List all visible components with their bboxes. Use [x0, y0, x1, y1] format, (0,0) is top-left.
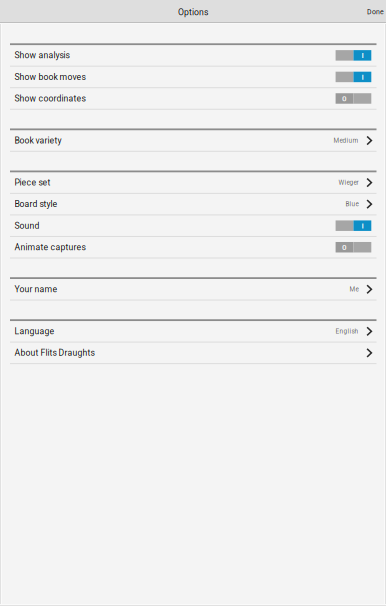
button[interactable]: Book variety: [0, 130, 386, 151]
button[interactable]: Done: [359, 0, 386, 22]
staticText: About Flits Draughts: [14, 348, 94, 358]
staticText: 0: [342, 94, 347, 103]
staticText: I: [361, 51, 363, 60]
button[interactable]: Animate captures: [0, 237, 386, 258]
staticText: I: [361, 72, 363, 82]
staticText: Show book moves: [14, 72, 85, 82]
button[interactable]: Sound: [0, 215, 386, 236]
staticText: Blue: [346, 200, 359, 208]
button[interactable]: Your name: [0, 279, 386, 300]
staticText: Board style: [14, 199, 57, 209]
staticText: Show coordinates: [14, 93, 85, 104]
button[interactable]: Piece set: [0, 172, 386, 193]
staticText: Show analysis: [14, 50, 69, 60]
button[interactable]: Show book moves: [0, 67, 386, 87]
staticText: Piece set: [14, 177, 50, 188]
staticText: 0: [342, 242, 347, 252]
staticText: Wieger: [339, 179, 359, 186]
staticText: Options: [178, 7, 208, 17]
button[interactable]: Board style: [0, 194, 386, 214]
staticText: Your name: [14, 284, 57, 294]
staticText: I: [361, 221, 363, 230]
staticText: Done: [367, 8, 384, 16]
staticText: Animate captures: [14, 242, 85, 252]
staticText: Language: [14, 326, 54, 336]
staticText: Me: [350, 285, 359, 293]
button[interactable]: Show analysis: [0, 45, 386, 66]
button[interactable]: Show coordinates: [0, 88, 386, 109]
staticText: Sound: [14, 221, 39, 231]
button[interactable]: Language: [0, 321, 386, 342]
button[interactable]: About Flits Draughts: [0, 343, 386, 363]
staticText: Medium: [334, 137, 359, 144]
staticText: Book variety: [14, 135, 61, 146]
staticText: English: [336, 328, 359, 335]
